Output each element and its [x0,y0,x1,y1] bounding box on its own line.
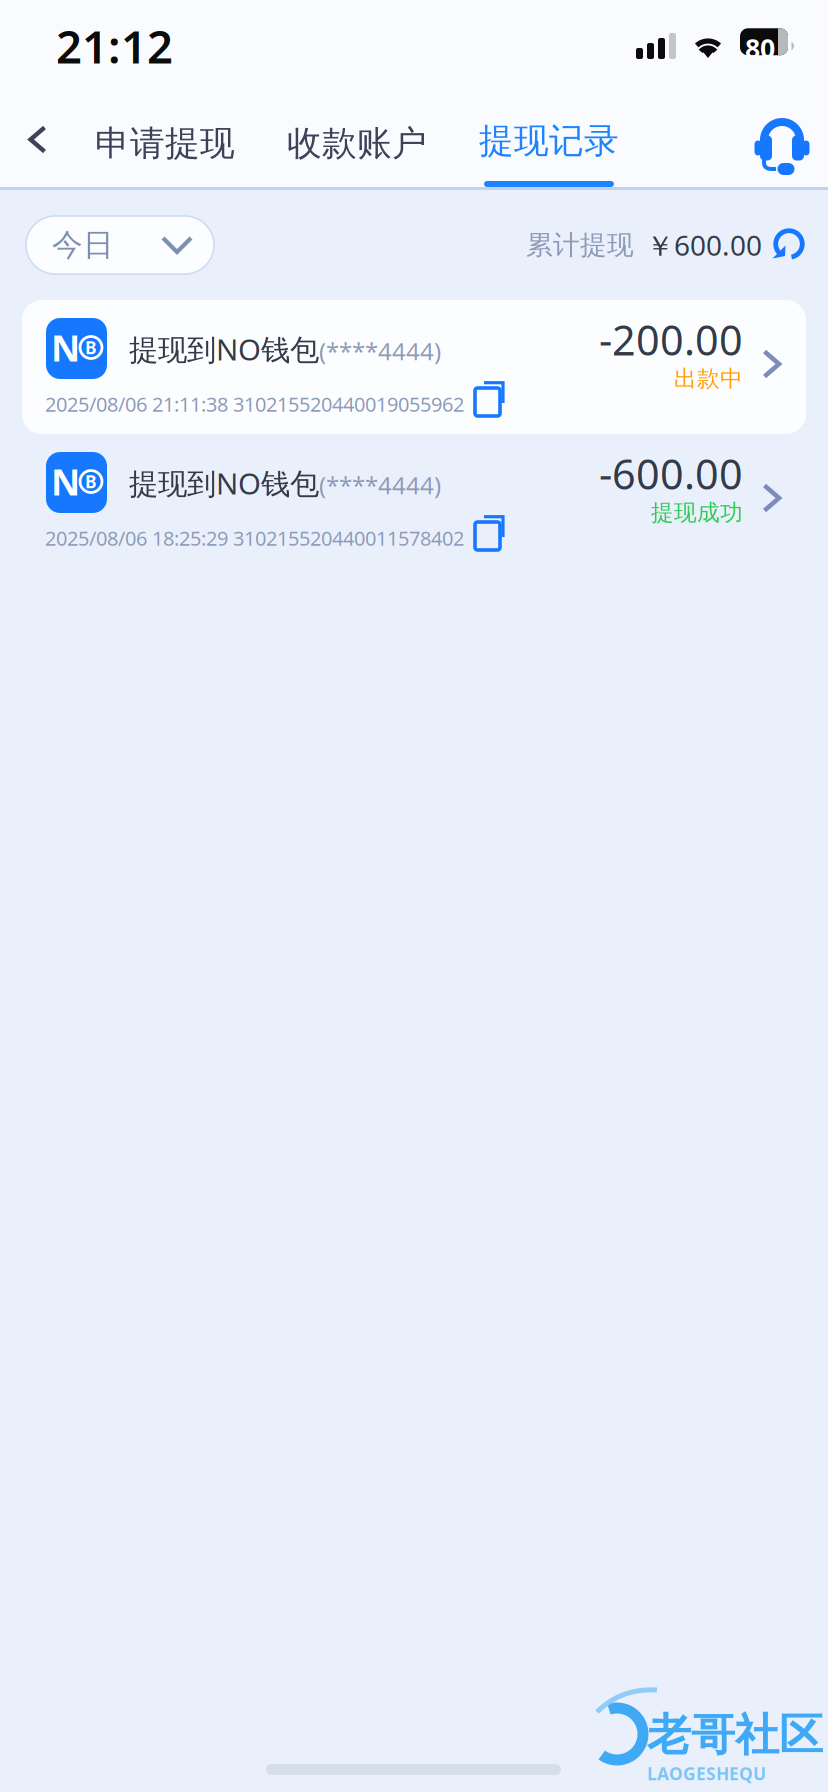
staticText: 2025/08/06 18:25:29 31021552044001157840… [45,525,464,551]
staticText: N [51,324,80,371]
button[interactable]: Refresh [771,227,807,263]
button[interactable]: 收款账户 [267,92,447,187]
staticText: 80 [745,30,775,66]
button[interactable]: Customer support [735,99,828,187]
staticText: 老哥社区 [647,1708,823,1762]
button[interactable]: 申请提现 [75,92,255,187]
staticText: 提现到NO钱包 [129,463,319,502]
button[interactable]: 提现记录 [459,92,639,187]
staticText: ￥600.00 [646,226,762,264]
staticText: 今日 [52,226,114,264]
button[interactable]: N [22,434,806,568]
button[interactable]: Back [0,92,76,187]
button[interactable]: 今日 [26,216,214,274]
staticText: 申请提现 [95,122,235,165]
staticText: 累计提现 [526,229,634,261]
staticText: N [51,458,80,505]
staticText: 提现到NO钱包 [129,329,319,368]
button[interactable]: N [22,300,806,434]
staticText: 2025/08/06 21:11:38 31021552044001905596… [45,391,464,417]
staticText: 提现记录 [479,120,619,162]
staticText: -600.00 [599,446,743,501]
staticText: 提现成功 [651,499,743,527]
staticText: 21:12 [56,16,173,76]
staticText: (****4444) [319,335,441,367]
staticText: 出款中 [674,365,743,393]
staticText: -200.00 [599,312,743,367]
staticText: B [85,336,97,359]
staticText: (****4444) [319,469,441,501]
staticText: B [85,470,97,493]
staticText: LAOGESHEQU [647,1762,766,1785]
staticText: 收款账户 [287,122,427,165]
